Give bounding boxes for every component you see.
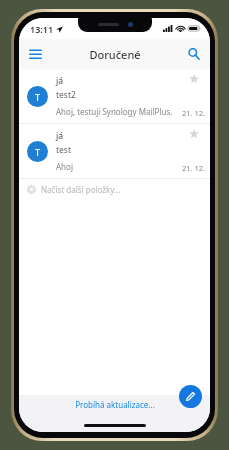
button[interactable]: Compose new message (179, 385, 202, 408)
button[interactable]: T (19, 124, 210, 179)
staticText: Ahoj, testuji Synology MailPlus. (56, 106, 173, 117)
staticText: T (35, 91, 41, 103)
staticText: Probíhá aktualizace... (75, 399, 155, 410)
button[interactable]: Načíst další položky... (19, 179, 210, 199)
staticText: test2 (56, 89, 76, 101)
button[interactable]: Star message (187, 72, 201, 86)
staticText: Doručené (89, 47, 141, 62)
staticText: Načíst další položky... (41, 184, 121, 195)
staticText: já (56, 130, 64, 142)
staticText: test (56, 144, 72, 156)
button[interactable]: Star message (187, 127, 201, 141)
staticText: Ahoj (56, 161, 73, 172)
button[interactable]: Search (181, 41, 207, 67)
staticText: 21. 12. (182, 108, 206, 118)
staticText: 21. 12. (182, 163, 206, 173)
button[interactable]: T (19, 69, 210, 124)
staticText: 13:11 (30, 23, 54, 35)
button[interactable]: Open navigation menu (22, 41, 48, 67)
staticText: já (56, 75, 64, 87)
staticText: T (35, 146, 41, 158)
